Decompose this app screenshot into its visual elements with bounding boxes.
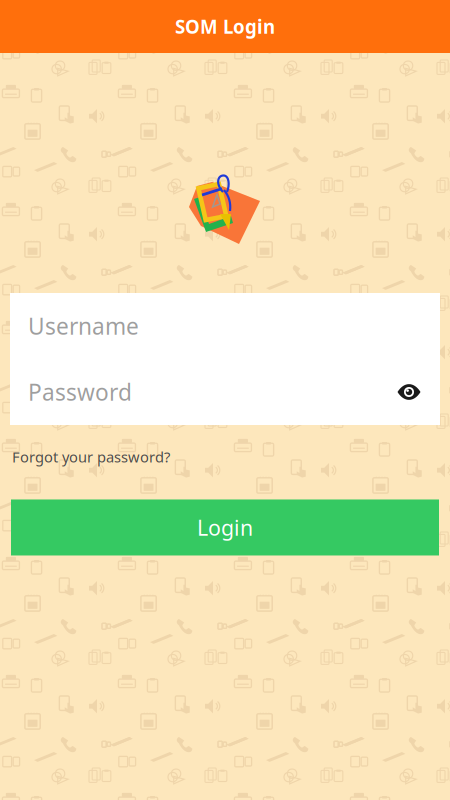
staticText: Login — [197, 513, 253, 542]
staticText: Forgot your password? — [12, 447, 170, 466]
button[interactable]: Password — [28, 359, 382, 425]
staticText: Username — [28, 311, 139, 341]
button[interactable]: Forgot your password? — [12, 447, 170, 466]
staticText: SOM Login — [175, 14, 275, 39]
staticText: Password — [28, 377, 132, 407]
button[interactable]: Username — [10, 293, 440, 359]
button[interactable]: Show password — [389, 359, 429, 425]
button[interactable]: Login — [11, 499, 439, 555]
